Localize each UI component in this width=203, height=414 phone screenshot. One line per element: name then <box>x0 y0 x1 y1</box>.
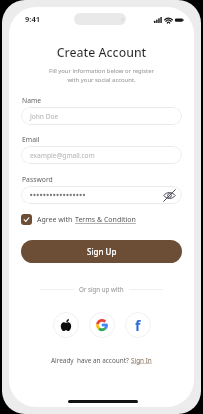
staticText: Or sign up with <box>79 285 124 293</box>
staticText: Agree with <box>37 215 75 225</box>
button[interactable]: Toggle password visibility <box>163 189 176 202</box>
staticText: Password <box>22 175 53 184</box>
staticText: Name <box>22 96 42 105</box>
staticText: Sign In <box>131 356 152 365</box>
staticText: Sign Up <box>87 246 117 257</box>
staticText: 9:41 <box>25 14 40 24</box>
button[interactable]: Sign In <box>131 356 152 365</box>
staticText: Create Account <box>9 44 194 61</box>
button[interactable]: example@gmail.com <box>21 146 182 164</box>
button[interactable]: Sign up with Google <box>89 312 115 338</box>
button[interactable]: John Doe <box>21 107 182 125</box>
staticText: John Doe <box>30 112 59 121</box>
button[interactable]: Sign up with Apple <box>53 312 79 338</box>
staticText: Email <box>22 135 40 144</box>
staticText: Fill your information below or register … <box>9 67 194 83</box>
staticText: Terms & Condition <box>75 215 136 225</box>
button[interactable]: Sign up with Facebook <box>125 312 151 338</box>
staticText: example@gmail.com <box>30 151 95 160</box>
button[interactable]: Sign Up <box>21 240 182 263</box>
staticText: f <box>135 316 141 335</box>
staticText: Already have an account? <box>51 356 131 365</box>
button[interactable]: Toggle password visibility <box>21 186 182 204</box>
button[interactable]: Agree with <box>21 214 136 225</box>
